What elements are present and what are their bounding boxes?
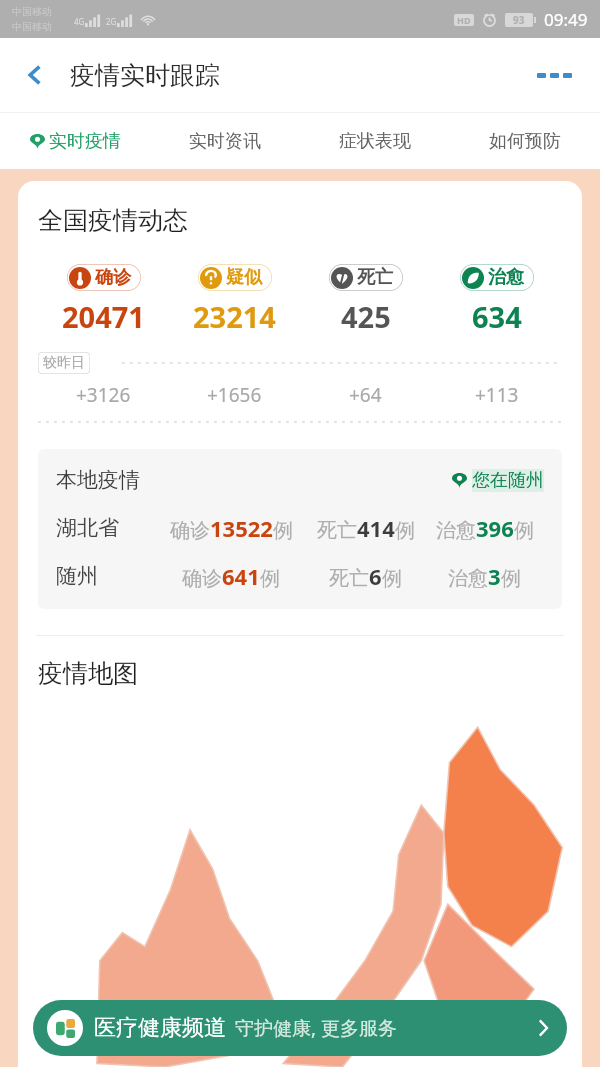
staticText: 较昨日	[43, 354, 85, 372]
staticText: 守护健康, 更多服务	[235, 1015, 398, 1041]
staticText: 如何预防	[489, 130, 561, 153]
staticText: 确诊	[182, 566, 222, 591]
staticText: +64	[349, 382, 382, 408]
staticText: 634	[472, 297, 522, 336]
button[interactable]: 治愈	[431, 264, 562, 336]
button[interactable]: 实时疫情	[0, 113, 150, 169]
button[interactable]: 死亡	[300, 264, 431, 336]
staticText: 例	[501, 566, 521, 591]
staticText: 20471	[62, 297, 145, 336]
staticText: 疑似	[226, 266, 262, 289]
staticText: 13522	[210, 513, 273, 543]
staticText: 症状表现	[339, 130, 411, 153]
staticText: 3	[488, 561, 501, 591]
staticText: 确诊	[95, 266, 131, 289]
staticText: +3126	[76, 382, 131, 408]
button[interactable]: 疑似	[169, 264, 300, 336]
staticText: 治愈	[448, 566, 488, 591]
staticText: 例	[395, 518, 415, 543]
staticText: 93	[513, 13, 525, 27]
staticText: 医疗健康频道	[94, 1014, 226, 1042]
staticText: 4G	[74, 16, 85, 27]
staticText: 例	[382, 566, 402, 591]
staticText: 中国移动	[12, 20, 52, 33]
other: Open health channel	[533, 1018, 553, 1038]
staticText: +113	[475, 382, 519, 408]
staticText: 湖北省	[56, 515, 156, 541]
button[interactable]: 如何预防	[450, 113, 600, 169]
staticText: 死亡	[329, 566, 369, 591]
staticText: 09:49	[544, 8, 588, 31]
staticText: 6	[369, 561, 382, 591]
button[interactable]: 症状表现	[300, 113, 450, 169]
staticText: 死亡	[317, 518, 357, 543]
staticText: +1656	[207, 382, 262, 408]
staticText: 425	[341, 297, 391, 336]
staticText: HD	[457, 14, 471, 26]
staticText: 641	[222, 561, 260, 591]
staticText: 例	[260, 566, 280, 591]
staticText: 疫情实时跟踪	[70, 60, 220, 91]
staticText: 全国疫情动态	[38, 205, 188, 236]
staticText: 2G	[106, 16, 117, 27]
staticText: 396	[476, 513, 514, 543]
staticText: 治愈	[436, 518, 476, 543]
staticText: 您在随州	[472, 469, 544, 492]
staticText: 随州	[56, 563, 156, 589]
staticText: 实时疫情	[49, 130, 121, 153]
staticText: 实时资讯	[189, 130, 261, 153]
staticText: 确诊	[170, 518, 210, 543]
button[interactable]: 医疗健康频道	[33, 1000, 567, 1056]
staticText: 治愈	[488, 266, 524, 289]
staticText: 例	[273, 518, 293, 543]
button[interactable]: Back	[14, 54, 56, 96]
staticText: 23214	[193, 297, 276, 336]
staticText: 本地疫情	[56, 467, 140, 493]
button[interactable]: 确诊	[38, 264, 169, 336]
button[interactable]: 您在随州	[452, 469, 544, 492]
staticText: 死亡	[357, 266, 393, 289]
button[interactable]: 实时资讯	[150, 113, 300, 169]
staticText: 中国移动	[12, 5, 52, 18]
staticText: 疫情地图	[38, 658, 138, 689]
button[interactable]: More options	[527, 63, 582, 88]
staticText: 414	[357, 513, 395, 543]
staticText: 例	[514, 518, 534, 543]
